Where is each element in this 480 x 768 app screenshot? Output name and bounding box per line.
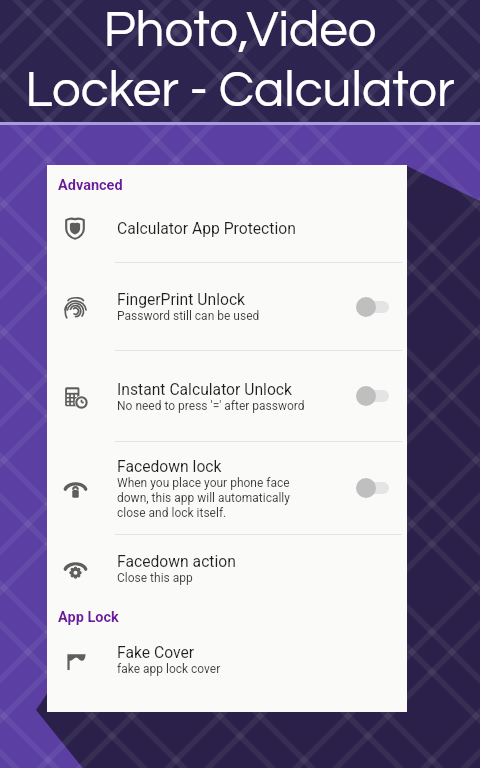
staticText: FingerPrint Unlock <box>117 290 246 308</box>
staticText: App Lock <box>58 609 119 626</box>
staticText: Fake Cover <box>117 643 195 661</box>
staticText: fake app lock cover <box>117 662 221 676</box>
button[interactable]: FingerPrint Unlock <box>47 263 407 350</box>
button[interactable]: Facedown action <box>47 535 407 601</box>
staticText: Password still can be used <box>117 309 260 323</box>
button[interactable]: Fake Cover <box>47 626 407 692</box>
staticText: Calculator App Protection <box>117 219 296 237</box>
staticText: Instant Calculator Unlock <box>117 380 293 398</box>
button[interactable]: Facedown lock <box>47 442 407 534</box>
staticText: When you place your phone face down, thi… <box>117 476 303 520</box>
button[interactable]: Toggle Instant Calculator Unlock <box>337 376 407 416</box>
button[interactable]: Calculator App Protection <box>47 194 407 262</box>
button[interactable]: Instant Calculator Unlock <box>47 351 407 441</box>
staticText: No need to press '=' after password <box>117 399 305 413</box>
staticText: Photo,Video <box>103 4 377 57</box>
staticText: Close this app <box>117 571 193 585</box>
staticText: Facedown lock <box>117 457 222 475</box>
button[interactable]: Toggle Facedown lock <box>337 468 407 508</box>
staticText: Advanced <box>58 177 123 194</box>
button[interactable]: Toggle FingerPrint Unlock <box>337 287 407 327</box>
staticText: Locker - Calculator <box>25 64 455 117</box>
staticText: Facedown action <box>117 552 236 570</box>
